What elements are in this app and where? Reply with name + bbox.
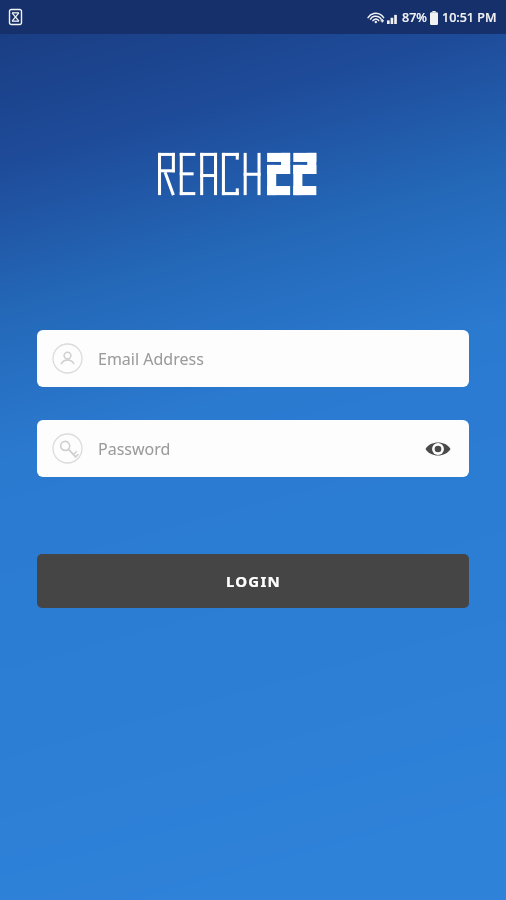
staticText: 87% bbox=[402, 9, 427, 26]
button[interactable]: Password bbox=[37, 420, 469, 477]
staticText: 10:51 PM bbox=[442, 9, 497, 26]
staticText: Password bbox=[98, 438, 421, 460]
button[interactable]: Email Address bbox=[37, 330, 469, 387]
staticText: LOGIN bbox=[226, 571, 281, 591]
staticText: Email Address bbox=[98, 348, 204, 370]
button[interactable]: Show password bbox=[421, 432, 455, 466]
button[interactable]: LOGIN bbox=[37, 554, 469, 608]
